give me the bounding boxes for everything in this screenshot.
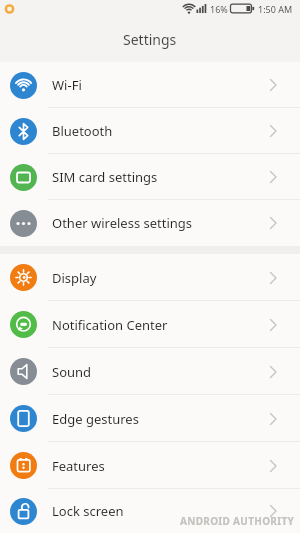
staticText: Wi-Fi bbox=[52, 76, 269, 94]
staticText: SIM card settings bbox=[52, 168, 269, 186]
staticText: 1:50 AM bbox=[258, 3, 293, 15]
staticText: 16% bbox=[210, 3, 228, 15]
staticText: Features bbox=[52, 457, 269, 475]
staticText: Lock screen bbox=[52, 502, 269, 520]
staticText: Display bbox=[52, 269, 269, 287]
staticText: Notification Center bbox=[52, 316, 269, 334]
staticText: ANDROID AUTHORITY bbox=[180, 514, 295, 528]
staticText: Settings bbox=[123, 30, 177, 49]
staticText: Bluetooth bbox=[52, 122, 269, 140]
staticText: Edge gestures bbox=[52, 410, 269, 428]
staticText: Sound bbox=[52, 363, 269, 381]
staticText: Other wireless settings bbox=[52, 214, 269, 232]
